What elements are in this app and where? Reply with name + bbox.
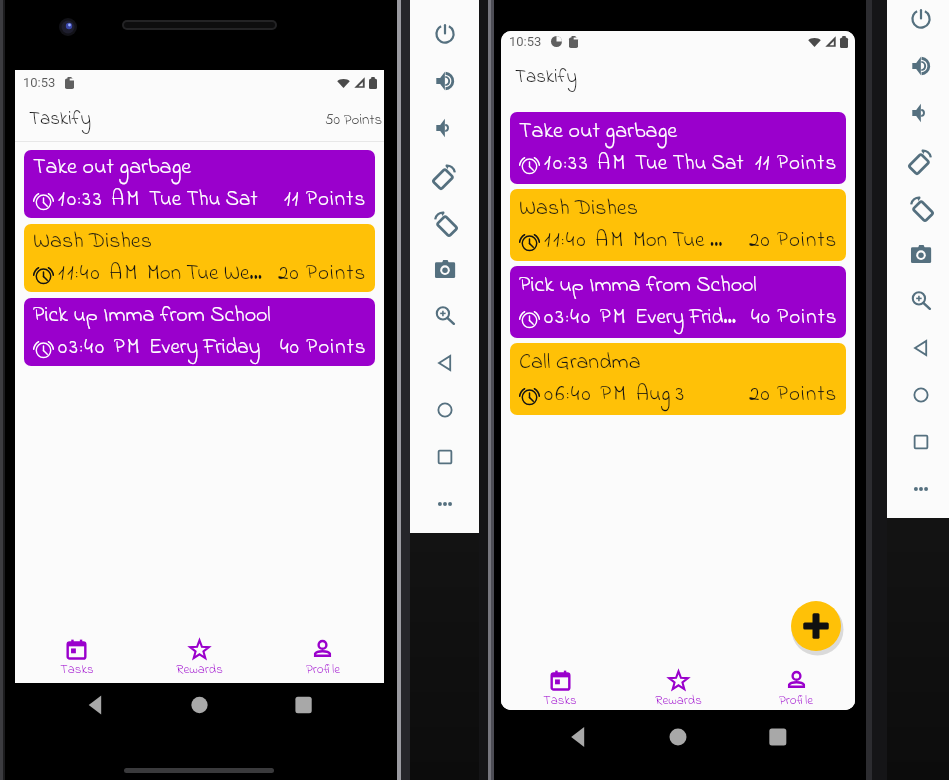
button[interactable]: Volume down bbox=[432, 115, 458, 141]
staticText: Rewards bbox=[655, 691, 702, 710]
staticText: 10:33 AM bbox=[544, 149, 628, 180]
button[interactable]: Power bbox=[432, 21, 458, 47]
staticText: 03:40 PM bbox=[58, 333, 142, 364]
button[interactable]: More bbox=[432, 491, 458, 517]
staticText: Take out garbage bbox=[33, 152, 192, 184]
staticText: Call Grandma bbox=[519, 347, 641, 379]
button[interactable]: Rotate left bbox=[908, 147, 934, 173]
staticText: 40 Points bbox=[751, 303, 838, 334]
button[interactable]: Wash Dishes bbox=[510, 189, 846, 261]
staticText: Take out garbage bbox=[519, 116, 678, 148]
button[interactable]: Rewards bbox=[138, 634, 261, 683]
staticText: 11:40 AM bbox=[58, 259, 140, 290]
button[interactable]: Tasks bbox=[15, 634, 138, 683]
staticText: 10:33 AM bbox=[58, 185, 142, 216]
staticText: 03:40 PM bbox=[544, 303, 628, 334]
staticText: Pick up Imma from School bbox=[33, 300, 271, 332]
staticText: 10:53 bbox=[23, 75, 56, 90]
staticText: Every Frid… bbox=[635, 303, 737, 334]
button[interactable]: Rotate right bbox=[908, 194, 934, 220]
staticText: 50 Points bbox=[325, 109, 383, 131]
staticText: 10:53 bbox=[509, 34, 542, 49]
staticText: Tue Thu Sat bbox=[635, 149, 744, 180]
staticText: Taskify bbox=[515, 64, 577, 92]
button[interactable]: Profile bbox=[261, 634, 384, 683]
button[interactable]: Screenshot bbox=[432, 256, 458, 282]
button[interactable]: Volume up bbox=[908, 53, 934, 79]
staticText: 20 Points bbox=[749, 380, 838, 411]
staticText: 06:40 PM bbox=[544, 380, 629, 411]
staticText: Mon Tue We… bbox=[147, 259, 263, 290]
staticText: Wash Dishes bbox=[519, 193, 638, 225]
button[interactable]: Pick up Imma from School bbox=[24, 298, 375, 366]
staticText: 11 Points bbox=[284, 185, 367, 216]
button[interactable]: Rotate right bbox=[432, 209, 458, 235]
staticText: Tasks bbox=[543, 691, 577, 710]
button[interactable]: Take out garbage bbox=[24, 150, 375, 218]
staticText: 40 Points bbox=[280, 333, 367, 364]
staticText: 11 Points bbox=[755, 149, 838, 180]
staticText: Profile bbox=[306, 660, 340, 679]
button[interactable]: Overview bbox=[908, 429, 934, 455]
button[interactable]: Volume down bbox=[908, 100, 934, 126]
staticText: Pick up Imma from School bbox=[519, 270, 757, 302]
button[interactable]: Volume up bbox=[432, 68, 458, 94]
button[interactable]: Power bbox=[908, 6, 934, 32]
button[interactable]: Back bbox=[908, 335, 934, 361]
staticText: Profile bbox=[779, 691, 813, 710]
button[interactable]: Call Grandma bbox=[510, 343, 846, 415]
button[interactable]: Home bbox=[432, 397, 458, 423]
staticText: 11:40 AM bbox=[544, 226, 626, 257]
button[interactable]: Rotate left bbox=[432, 162, 458, 188]
staticText: Mon Tue … bbox=[633, 226, 723, 257]
staticText: Every Friday bbox=[149, 333, 261, 364]
button[interactable]: Back bbox=[432, 350, 458, 376]
button[interactable]: Zoom bbox=[908, 288, 934, 314]
button[interactable]: Take out garbage bbox=[510, 112, 846, 184]
button[interactable]: Screenshot bbox=[908, 241, 934, 267]
button[interactable]: Home bbox=[908, 382, 934, 408]
button[interactable]: Add task bbox=[791, 601, 841, 651]
button[interactable]: Pick up Imma from School bbox=[510, 266, 846, 338]
button[interactable]: Profile bbox=[737, 669, 855, 710]
staticText: 20 Points bbox=[278, 259, 367, 290]
button[interactable]: Wash Dishes bbox=[24, 224, 375, 292]
staticText: Aug 3 bbox=[636, 380, 685, 411]
button[interactable]: Tasks bbox=[501, 669, 619, 710]
button[interactable]: Zoom bbox=[432, 303, 458, 329]
staticText: Wash Dishes bbox=[33, 226, 152, 258]
button[interactable]: Overview bbox=[432, 444, 458, 470]
staticText: 20 Points bbox=[749, 226, 838, 257]
staticText: Tue Thu Sat bbox=[149, 185, 258, 216]
staticText: Taskify bbox=[29, 106, 91, 134]
button[interactable]: More bbox=[908, 476, 934, 502]
button[interactable]: Rewards bbox=[619, 669, 737, 710]
staticText: Rewards bbox=[176, 660, 223, 679]
staticText: Tasks bbox=[60, 660, 94, 679]
